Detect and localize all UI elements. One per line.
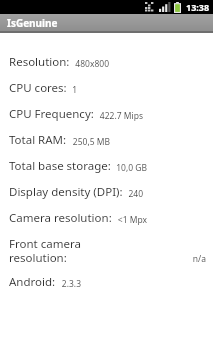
staticText: 250,5 MB [72, 136, 110, 148]
staticText: Front camera resolution: [9, 236, 105, 265]
staticText: Resolution: [9, 54, 70, 70]
staticText: <1 Mpx [117, 214, 147, 226]
staticText: 13:38 [186, 1, 210, 13]
staticText: CPU cores: [9, 80, 67, 96]
staticText: Android: [9, 274, 56, 290]
staticText: Camera resolution: [9, 210, 112, 226]
staticText: 480x800 [75, 58, 109, 70]
button[interactable]: IsGenuine [0, 14, 213, 31]
button[interactable]: Camera resolution: [9, 210, 206, 226]
staticText: CPU Frequency: [9, 106, 94, 122]
button[interactable]: Front camera resolution: [9, 236, 206, 265]
staticText: 2.3.3 [61, 278, 81, 290]
staticText: Total base storage: [9, 158, 111, 174]
staticText: IsGenuine [7, 16, 58, 30]
staticText: 10,0 GB [116, 162, 147, 174]
button[interactable]: Resolution: [9, 54, 206, 70]
button[interactable]: CPU Frequency: [9, 106, 206, 122]
button[interactable]: Total RAM: [9, 132, 206, 148]
staticText: Display density (DPI): [9, 184, 123, 200]
button[interactable]: Total base storage: [9, 158, 206, 174]
button[interactable]: CPU cores: [9, 80, 206, 96]
button[interactable]: Display density (DPI): [9, 184, 206, 200]
staticText: 1 [72, 84, 77, 96]
staticText: 422.7 Mips [99, 110, 143, 122]
staticText: Total RAM: [9, 132, 67, 148]
button[interactable]: Android: [9, 274, 206, 290]
staticText: n/a [192, 253, 206, 265]
staticText: 240 [128, 188, 143, 200]
